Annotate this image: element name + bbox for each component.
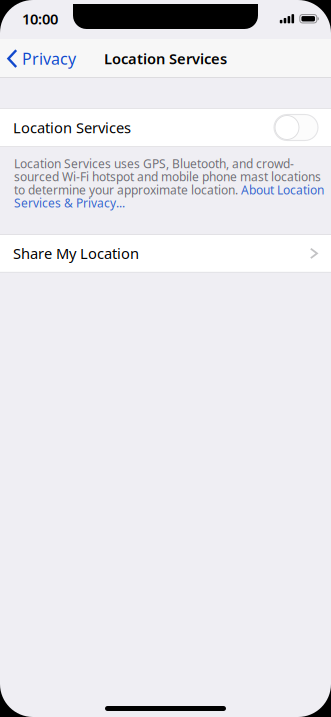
staticText: Privacy (22, 48, 76, 69)
button[interactable]: Privacy (0, 43, 84, 74)
button[interactable]: Share My Location (0, 234, 331, 272)
staticText: Location Services (104, 49, 227, 68)
button[interactable]: Location Services (0, 108, 331, 147)
button[interactable]: About Location (241, 182, 324, 198)
staticText: Location Services uses GPS, Bluetooth, a… (14, 156, 294, 171)
staticText: Share My Location (13, 244, 139, 263)
staticText: About Location (241, 182, 324, 198)
staticText: to determine your approximate location. (14, 182, 241, 198)
button[interactable]: Services & Privacy... (14, 195, 125, 211)
staticText: sourced Wi-Fi hotspot and mobile phone m… (14, 169, 321, 185)
staticText: 10:00 (22, 9, 58, 28)
staticText: Services & Privacy... (14, 195, 125, 211)
staticText: Location Services (13, 118, 131, 137)
